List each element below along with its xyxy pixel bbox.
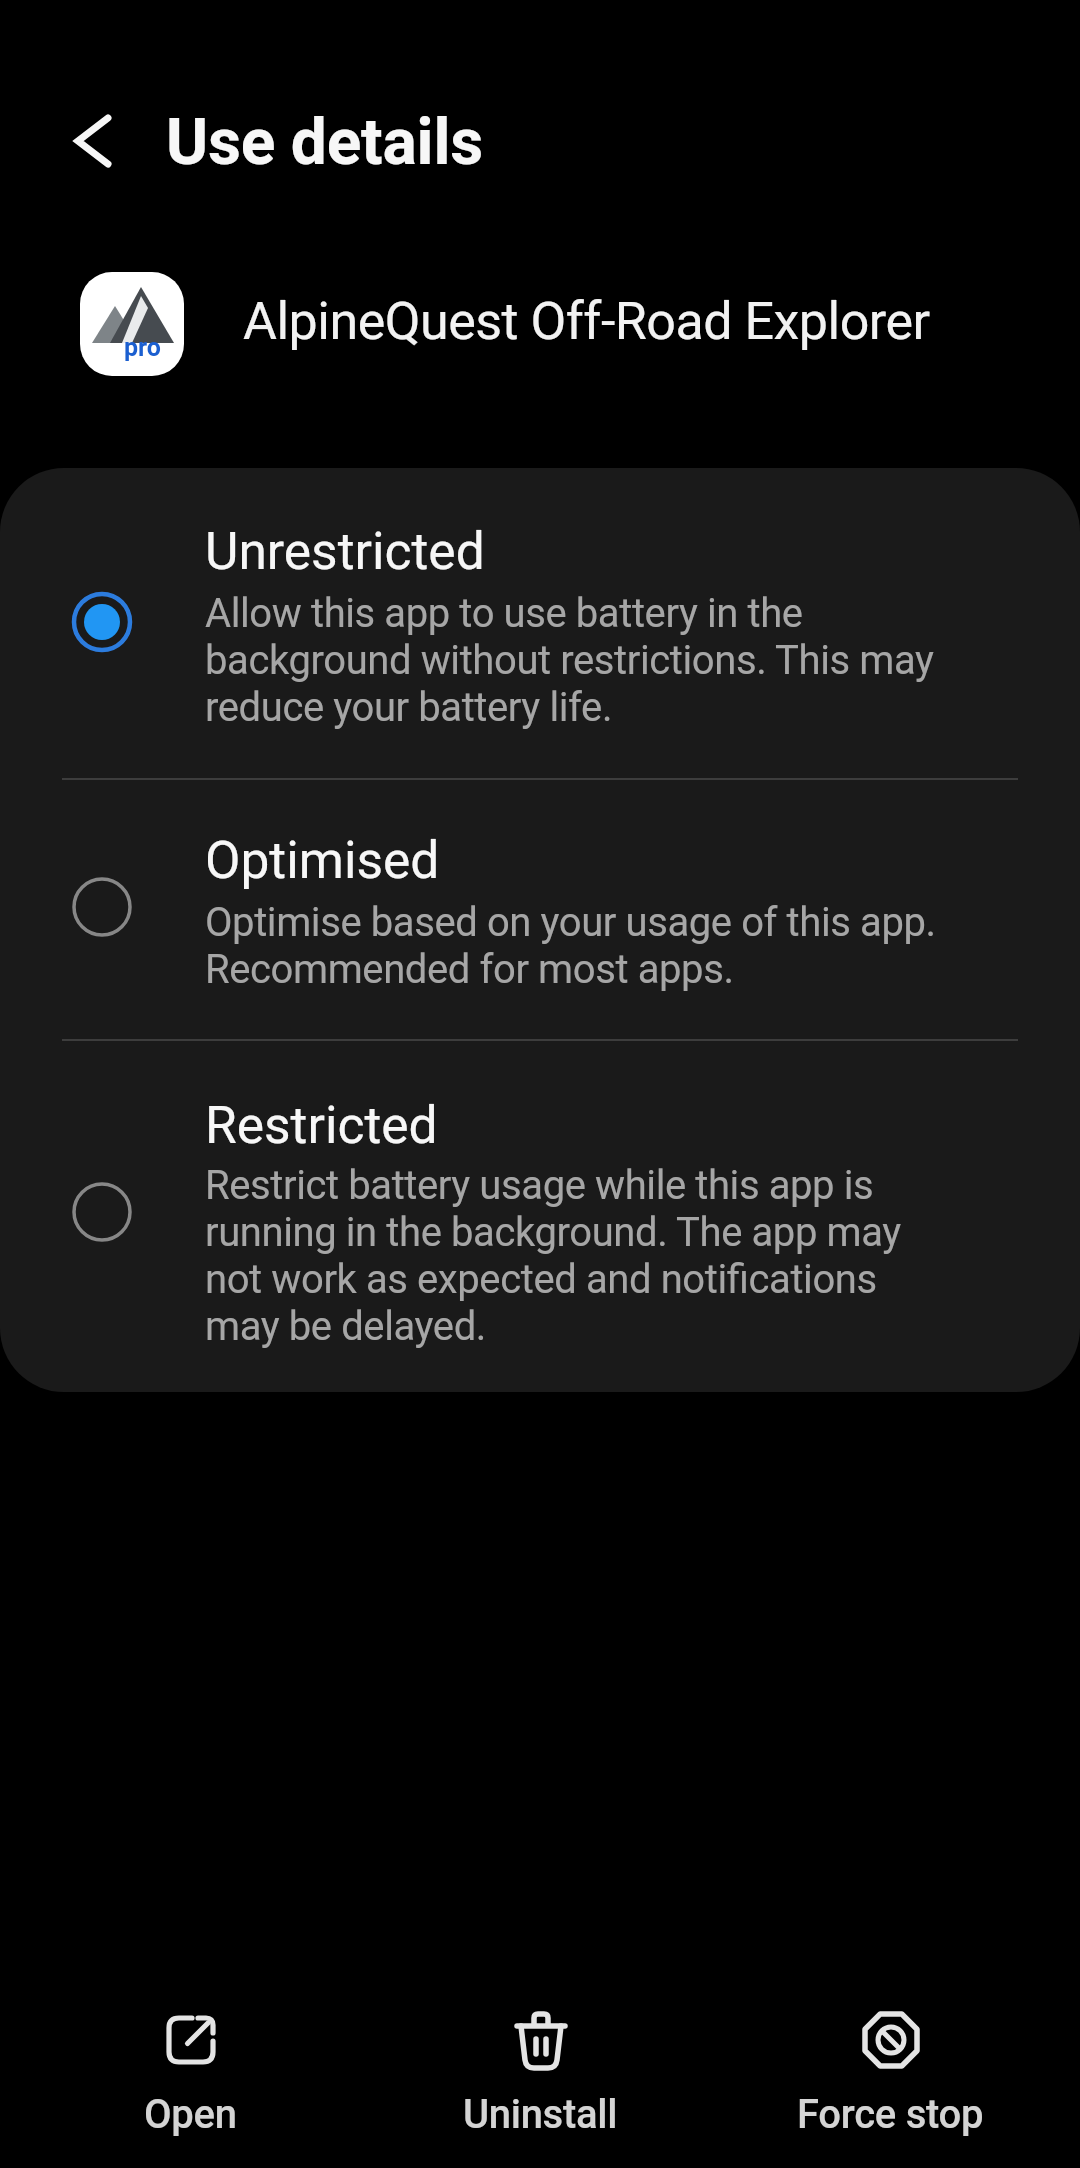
button[interactable]: Uninstall bbox=[430, 1988, 650, 2148]
button[interactable]: Force stop bbox=[780, 1988, 1000, 2148]
button[interactable]: Optimised bbox=[0, 779, 1080, 1040]
button[interactable] bbox=[43, 91, 143, 191]
staticText: Uninstall bbox=[463, 2091, 618, 2138]
staticText: Use details bbox=[166, 105, 483, 180]
staticText: Force stop bbox=[797, 2091, 984, 2138]
staticText: Restrict battery usage while this app is… bbox=[205, 1162, 901, 1350]
staticText: Optimise based on your usage of this app… bbox=[205, 899, 936, 993]
staticText: Unrestricted bbox=[205, 521, 485, 581]
staticText: Open bbox=[144, 2091, 237, 2138]
button[interactable]: Restricted bbox=[0, 1040, 1080, 1392]
staticText: Restricted bbox=[205, 1095, 438, 1155]
staticText: Allow this app to use battery in the bac… bbox=[205, 590, 934, 731]
button[interactable]: Open bbox=[80, 1988, 300, 2148]
staticText: Optimised bbox=[205, 830, 440, 890]
staticText: AlpineQuest Off-Road Explorer bbox=[243, 291, 930, 352]
button[interactable]: Unrestricted bbox=[0, 468, 1080, 779]
staticText: pro bbox=[124, 333, 161, 362]
